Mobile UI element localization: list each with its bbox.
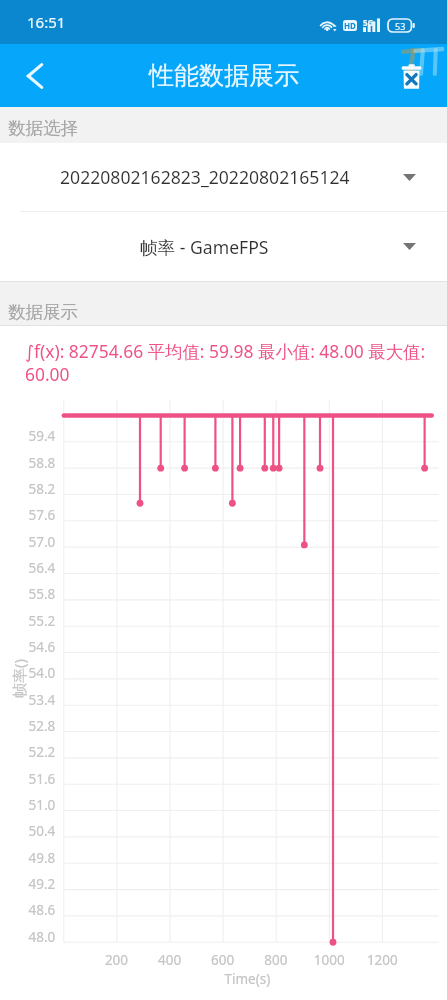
button[interactable]: 20220802162823_20220802165124 bbox=[0, 143, 447, 211]
staticText: 5G bbox=[363, 17, 374, 28]
staticText: 数据选择 bbox=[8, 117, 78, 139]
staticText: 20220802162823_20220802165124 bbox=[60, 165, 350, 189]
button[interactable]: Delete bbox=[393, 44, 447, 107]
staticText: 16:51 bbox=[27, 12, 66, 32]
staticText: ∫f(x): 82754.66 平均值: 59.98 最小值: 48.00 最大… bbox=[25, 339, 437, 386]
staticText: HD bbox=[344, 20, 356, 31]
staticText: 53 bbox=[395, 20, 406, 32]
staticText: 数据展示 bbox=[8, 301, 78, 323]
button[interactable]: 帧率 - GameFPS bbox=[0, 212, 447, 281]
staticText: 性能数据展示 bbox=[149, 60, 299, 91]
button[interactable]: Back bbox=[0, 44, 58, 107]
staticText: 帧率 - GameFPS bbox=[140, 235, 269, 259]
